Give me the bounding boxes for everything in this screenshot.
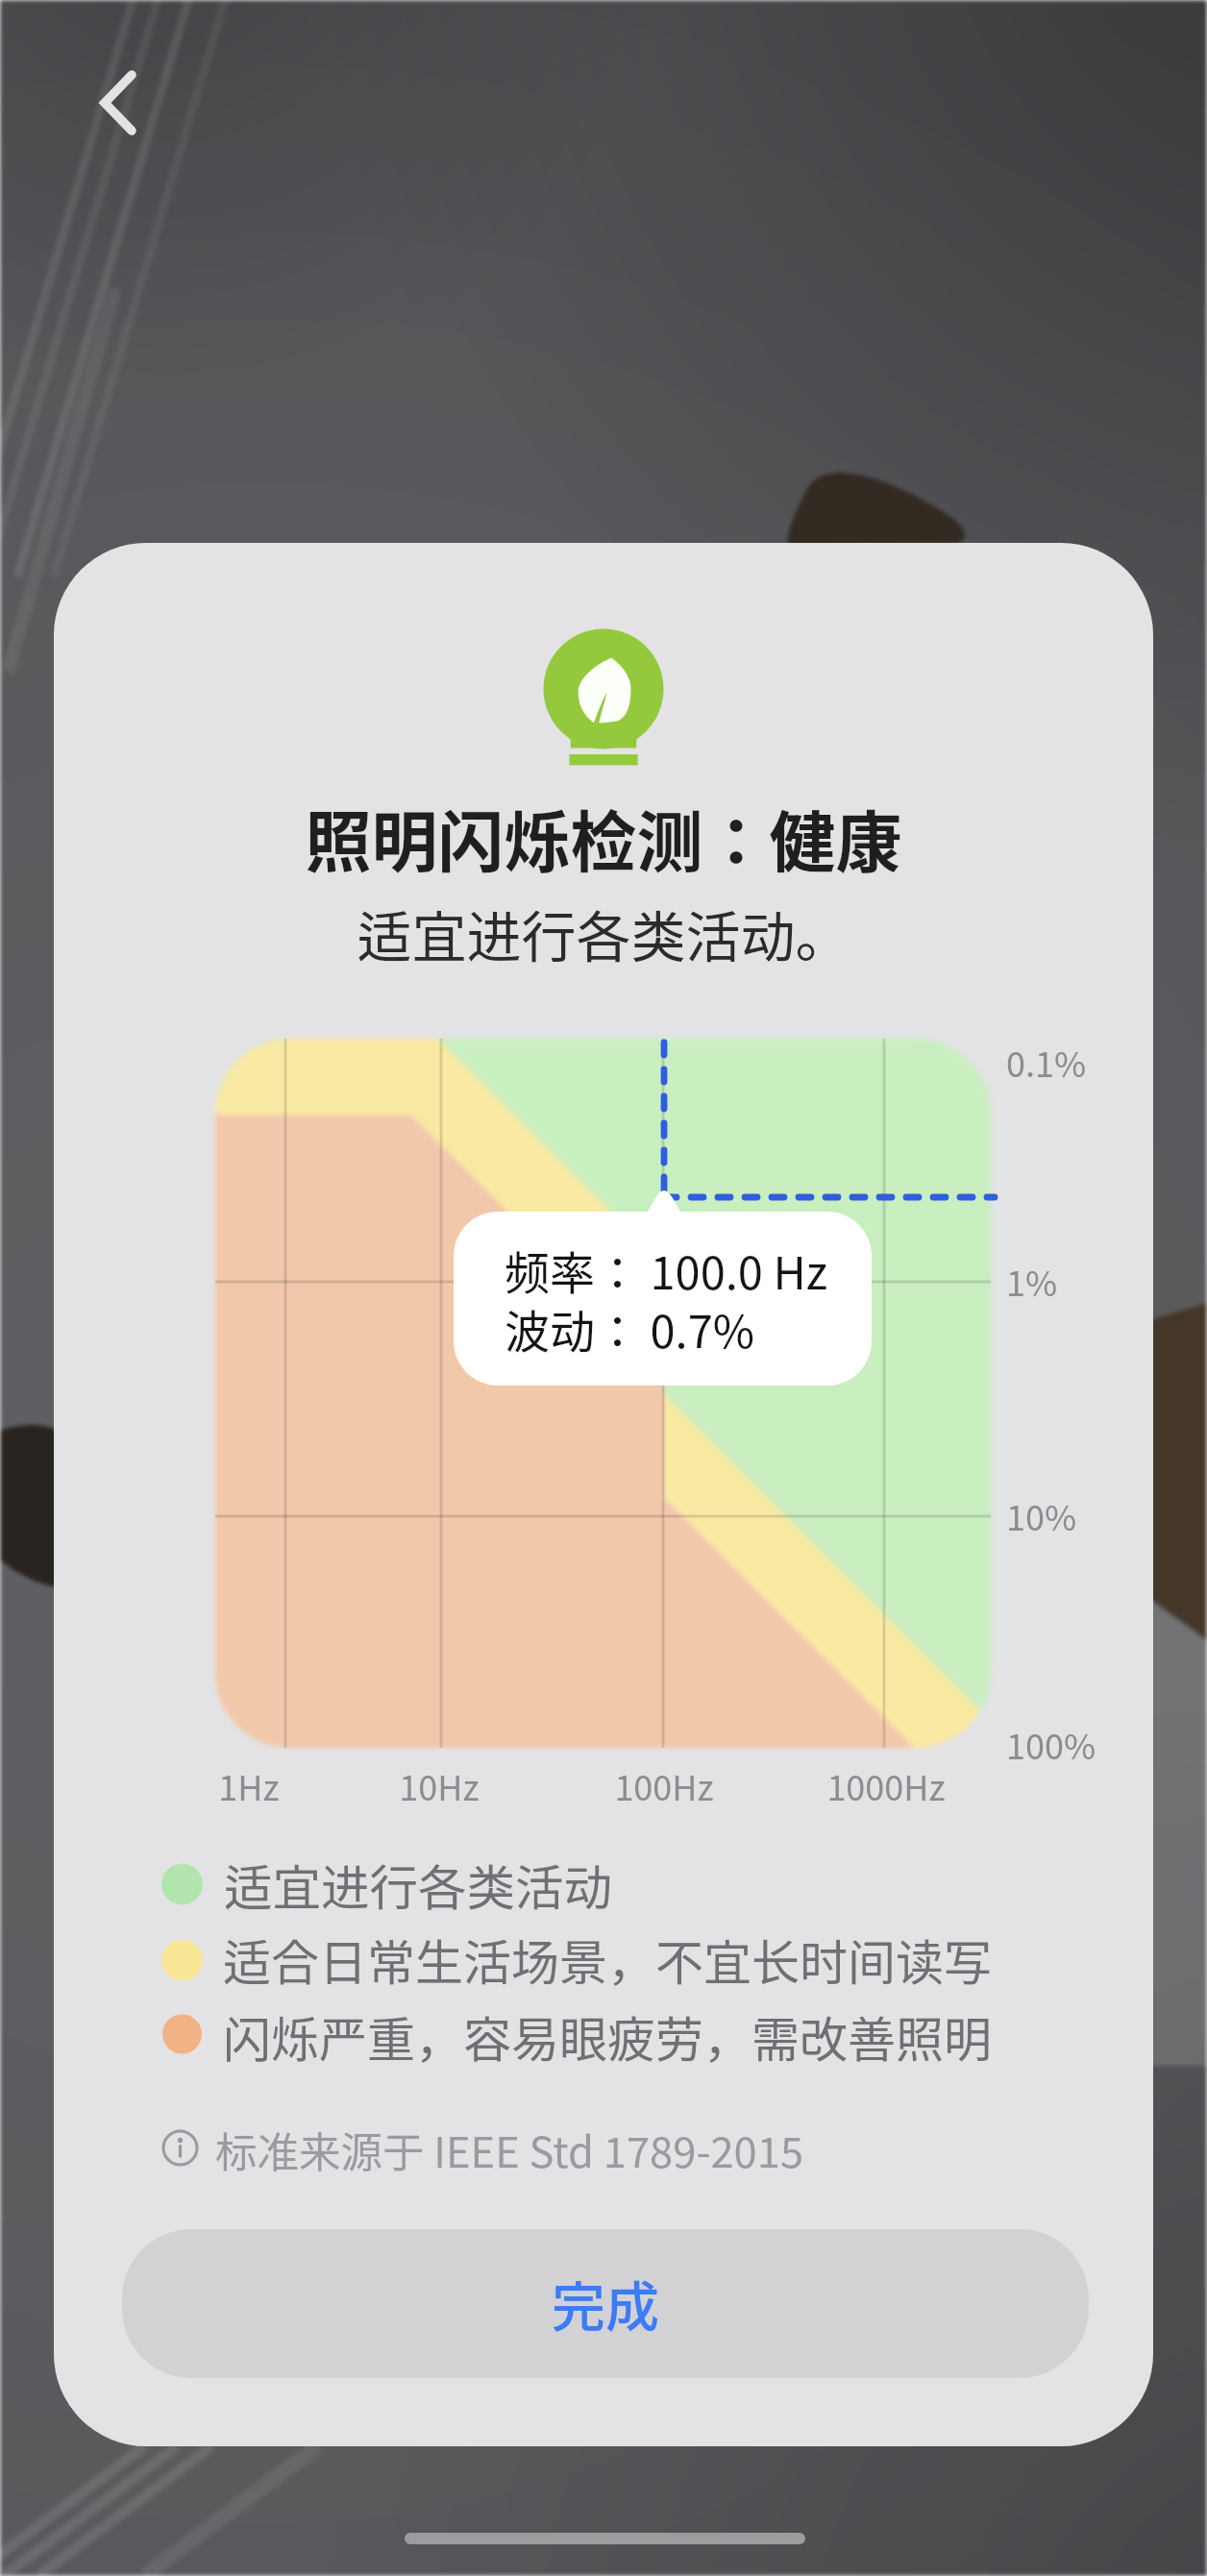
staticText: 0.1%: [1006, 1037, 1207, 1083]
staticText: 100%: [1006, 1719, 1207, 1765]
staticText: 标准来源于 IEEE Std 1789-2015: [215, 2120, 1207, 2174]
staticText: 闪烁严重，容易眼疲劳，需改善照明: [223, 2001, 1207, 2065]
staticText: 波动： 0.7%: [505, 1295, 1207, 1355]
staticText: 照明闪烁检测：健康: [27, 790, 1180, 877]
button[interactable]: Back: [75, 61, 161, 144]
button[interactable]: [122, 2229, 1089, 2378]
staticText: 适宜进行各类活动: [224, 1849, 1207, 1913]
staticText: 频率： 100.0 Hz: [505, 1237, 1207, 1296]
staticText: 10Hz: [0, 1760, 1016, 1806]
staticText: 100Hz: [87, 1760, 1207, 1806]
staticText: 1%: [1006, 1256, 1207, 1302]
staticText: 10%: [1006, 1490, 1207, 1536]
staticText: 完成: [29, 2264, 1182, 2335]
staticText: 适宜进行各类活动。: [27, 894, 1180, 966]
staticText: 1000Hz: [309, 1760, 1207, 1806]
staticText: 1Hz: [0, 1760, 825, 1806]
staticText: 适合日常生活场景，不宜长时间读写: [223, 1925, 1207, 1988]
